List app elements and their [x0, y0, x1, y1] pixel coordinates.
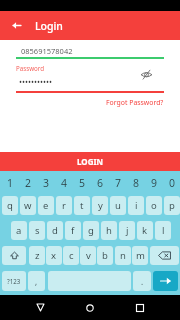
staticText: 6 — [97, 176, 104, 190]
staticText: 9 — [151, 176, 158, 190]
staticText: b — [102, 249, 108, 262]
button[interactable]: Backspace — [150, 246, 179, 265]
button[interactable]: f — [65, 221, 81, 240]
staticText: o — [151, 199, 157, 212]
button[interactable]: Back — [4, 17, 29, 34]
button[interactable]: 8 — [128, 175, 144, 191]
button[interactable]: Space — [48, 271, 131, 291]
button[interactable]: w — [20, 196, 36, 215]
staticText: d — [52, 224, 58, 237]
button[interactable]: g — [83, 221, 99, 240]
button[interactable]: 6 — [92, 175, 108, 191]
button[interactable]: Enter — [153, 271, 178, 291]
staticText: m — [136, 249, 145, 262]
staticText: y — [98, 199, 103, 212]
button[interactable]: ?123 — [2, 271, 26, 291]
button[interactable]: i — [128, 196, 144, 215]
button[interactable]: x — [46, 246, 62, 265]
staticText: Forgot Password? — [106, 98, 164, 107]
button[interactable]: Forgot Password? — [106, 98, 164, 107]
staticText: n — [120, 249, 126, 262]
button[interactable]: y — [92, 196, 108, 215]
staticText: z — [35, 249, 40, 262]
button[interactable]: p — [164, 196, 180, 215]
staticText: i — [135, 199, 138, 212]
staticText: x — [51, 249, 57, 262]
button[interactable]: c — [63, 246, 79, 265]
button[interactable]: Back — [28, 299, 52, 315]
button[interactable]: v — [80, 246, 96, 265]
button[interactable]: z — [29, 246, 45, 265]
button[interactable]: t — [74, 196, 90, 215]
staticText: f — [71, 224, 75, 237]
staticText: v — [86, 249, 91, 262]
staticText: 1 — [7, 176, 14, 190]
button[interactable]: a — [11, 221, 27, 240]
button[interactable]: Show password — [138, 66, 154, 82]
button[interactable]: Shift — [2, 246, 26, 265]
button[interactable]: 4 — [56, 175, 72, 191]
staticText: 4 — [61, 176, 68, 190]
staticText: a — [16, 224, 22, 237]
staticText: 7 — [115, 176, 122, 190]
staticText: e — [43, 199, 49, 212]
staticText: q — [7, 199, 13, 212]
button[interactable]: 7 — [110, 175, 126, 191]
button[interactable]: l — [155, 221, 171, 240]
staticText: ••••••••••• — [19, 76, 53, 87]
button[interactable]: o — [146, 196, 162, 215]
button[interactable]: q — [2, 196, 18, 215]
button[interactable]: u — [110, 196, 126, 215]
staticText: 8 — [133, 176, 140, 190]
button[interactable]: Recents — [128, 300, 152, 316]
button[interactable]: k — [137, 221, 153, 240]
staticText: 5 — [79, 176, 86, 190]
staticText: w — [24, 199, 32, 212]
staticText: s — [35, 224, 40, 237]
button[interactable]: 9 — [146, 175, 162, 191]
staticText: . — [141, 276, 144, 287]
staticText: j — [126, 224, 129, 237]
button[interactable]: 1 — [2, 175, 18, 191]
staticText: u — [115, 199, 121, 212]
staticText: p — [169, 199, 175, 212]
button[interactable]: h — [101, 221, 117, 240]
staticText: h — [106, 224, 112, 237]
staticText: , — [35, 276, 38, 287]
staticText: c — [69, 249, 74, 262]
staticText: k — [142, 224, 148, 237]
staticText: g — [88, 224, 94, 237]
button[interactable]: Home — [78, 300, 102, 316]
staticText: Password — [16, 64, 44, 72]
staticText: 0 — [169, 176, 176, 190]
staticText: 3 — [43, 176, 50, 190]
button[interactable]: LOGIN — [0, 152, 180, 171]
staticText: Login — [35, 19, 63, 33]
button[interactable]: 5 — [74, 175, 90, 191]
button[interactable]: d — [47, 221, 63, 240]
button[interactable]: 2 — [20, 175, 36, 191]
staticText: 2 — [25, 176, 32, 190]
staticText: l — [162, 224, 165, 237]
button[interactable]: 0 — [164, 175, 180, 191]
staticText: t — [80, 199, 84, 212]
staticText: ?123 — [7, 277, 21, 285]
button[interactable]: j — [119, 221, 135, 240]
button[interactable]: r — [56, 196, 72, 215]
staticText: LOGIN — [77, 156, 104, 167]
button[interactable]: 3 — [38, 175, 54, 191]
button[interactable]: m — [132, 246, 148, 265]
button[interactable]: n — [115, 246, 131, 265]
staticText: 085691578042 — [21, 46, 73, 56]
button[interactable]: , — [28, 271, 45, 291]
button[interactable]: e — [38, 196, 54, 215]
button[interactable]: b — [97, 246, 113, 265]
button[interactable]: s — [29, 221, 45, 240]
staticText: r — [62, 199, 66, 212]
button[interactable]: . — [133, 271, 151, 291]
